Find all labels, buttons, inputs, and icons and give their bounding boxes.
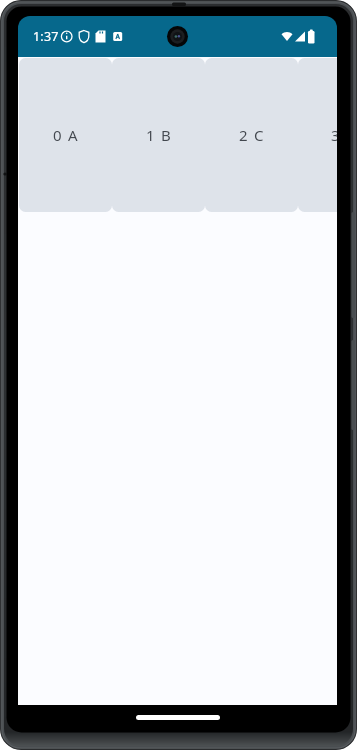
staticText: 2 C bbox=[239, 125, 265, 145]
button[interactable]: 3 D bbox=[298, 58, 337, 212]
button[interactable]: 2 C bbox=[205, 58, 298, 212]
staticText: 3 D bbox=[331, 125, 337, 145]
staticText: 1 B bbox=[146, 125, 172, 145]
staticText: 1:37 bbox=[33, 28, 59, 45]
button[interactable]: 1 B bbox=[112, 58, 205, 212]
button[interactable] bbox=[136, 715, 220, 720]
staticText: 0 A bbox=[53, 125, 79, 145]
button[interactable]: 0 A bbox=[19, 58, 112, 212]
